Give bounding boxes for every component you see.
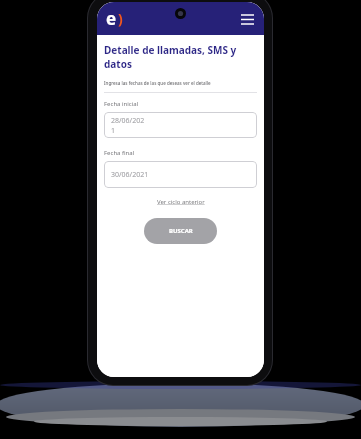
staticText: e: [106, 7, 117, 30]
button[interactable]: Open menu: [237, 9, 257, 29]
staticText: Fecha inicial: [104, 100, 139, 108]
button[interactable]: Ver ciclo anterior: [153, 196, 209, 208]
button[interactable]: 30/06/2021: [104, 161, 257, 188]
staticText: ): [118, 9, 123, 28]
staticText: Detalle de llamadas, SMS y datos: [104, 43, 257, 71]
button[interactable]: BUSCAR: [144, 218, 217, 244]
button[interactable]: Entel home: [106, 7, 123, 30]
button[interactable]: 28/06/202: [104, 112, 257, 138]
staticText: 28/06/202: [111, 116, 145, 126]
staticText: BUSCAR: [169, 227, 193, 235]
staticText: Ingresa las fechas de las que deseas ver…: [104, 80, 211, 86]
staticText: Fecha final: [104, 149, 135, 157]
staticText: 30/06/2021: [111, 170, 149, 180]
staticText: 1: [111, 126, 116, 136]
staticText: Ver ciclo anterior: [157, 198, 205, 206]
